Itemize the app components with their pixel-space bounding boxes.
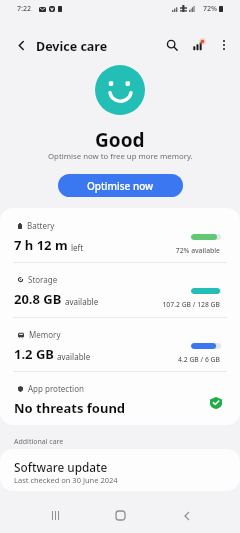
staticText: 107.2 GB / 128 GB — [100, 300, 220, 309]
button[interactable]: Memory — [0, 317, 240, 371]
button[interactable]: App protection — [0, 371, 240, 425]
staticText: 7:22 — [17, 4, 31, 14]
staticText: 72% — [203, 4, 217, 14]
staticText: Optimise now to free up more memory. — [48, 151, 193, 162]
staticText: Last checked on 30 June 2024 — [14, 475, 118, 485]
staticText: Storage — [28, 274, 58, 285]
staticText: Memory — [29, 329, 61, 340]
staticText: 72% available — [100, 246, 220, 255]
staticText: 20.8 GB — [14, 290, 62, 308]
staticText: Software update — [14, 459, 108, 475]
staticText: left — [71, 242, 84, 253]
button[interactable]: Navigate up — [8, 32, 34, 58]
staticText: No threats found — [14, 399, 126, 417]
staticText: Good — [95, 127, 145, 153]
staticText: App protection — [28, 383, 84, 394]
button[interactable]: Recents — [37, 498, 73, 533]
button[interactable]: Software update — [0, 449, 240, 491]
staticText: 1.2 GB — [14, 345, 54, 363]
staticText: Optimise now — [87, 179, 154, 193]
button[interactable]: Search — [159, 32, 185, 58]
staticText: available — [57, 351, 91, 362]
staticText: Device care — [36, 38, 108, 55]
staticText: 4.2 GB / 6 GB — [100, 355, 220, 364]
button[interactable]: Home — [102, 498, 138, 533]
button[interactable]: Usage statistics — [185, 32, 211, 58]
button[interactable]: Back — [169, 498, 205, 533]
button[interactable]: Storage — [0, 262, 240, 316]
button[interactable]: More options — [211, 32, 237, 58]
staticText: Additional care — [14, 437, 64, 447]
button[interactable]: Battery — [0, 208, 240, 262]
button[interactable]: Optimise now — [58, 174, 183, 197]
staticText: Battery — [27, 220, 55, 231]
staticText: available — [65, 296, 99, 307]
staticText: 7 h 12 m — [14, 236, 68, 254]
